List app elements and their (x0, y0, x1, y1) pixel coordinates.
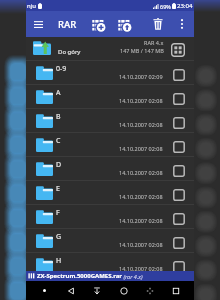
staticText: 23:04 (177, 2, 193, 10)
button[interactable]: Add to archive (89, 15, 108, 34)
staticText: 69% (160, 3, 171, 10)
button[interactable]: More options (173, 15, 190, 32)
staticText: RAR (58, 18, 77, 31)
button[interactable]: Recents (168, 283, 183, 298)
button[interactable]: Switch to grid view (169, 41, 187, 59)
staticText: B (56, 112, 61, 122)
button[interactable]: G (26, 229, 194, 253)
button[interactable]: 0-9 (26, 61, 194, 85)
button[interactable]: Select B (170, 114, 188, 132)
button[interactable]: Select H (170, 258, 188, 276)
staticText: H (56, 256, 62, 266)
button[interactable]: Delete (149, 15, 167, 33)
staticText: nju (27, 2, 36, 10)
button[interactable]: Select A (170, 90, 188, 108)
staticText: (rar 4.x) (122, 273, 143, 280)
button[interactable]: C (26, 133, 194, 157)
button[interactable]: Select D (170, 162, 188, 180)
staticText: C (56, 136, 61, 146)
staticText: 14.10.2007 02:08 (119, 193, 163, 200)
button[interactable]: Select 0-9 (170, 66, 188, 84)
staticText: 14.10.2007 02:08 (119, 121, 163, 128)
staticText: 14.10.2007 02:08 (119, 241, 163, 248)
staticText: E (56, 184, 60, 194)
button[interactable]: Resize (142, 283, 157, 298)
button[interactable]: Select F (170, 210, 188, 228)
button[interactable]: Extract from archive (115, 15, 134, 34)
button[interactable]: Open navigation menu (30, 15, 47, 32)
button[interactable]: Home (116, 283, 131, 298)
staticText: G (56, 232, 62, 242)
staticText: 14.10.2007 02:08 (119, 169, 163, 176)
staticText: Do góry (58, 48, 81, 56)
button[interactable]: E (26, 181, 194, 205)
button[interactable]: Select G (170, 234, 188, 252)
button[interactable]: Back (63, 283, 78, 298)
staticText: 14.10.2007 02:08 (119, 265, 163, 272)
button[interactable]: F (26, 205, 194, 229)
staticText: 14.10.2007 02:08 (119, 145, 163, 152)
staticText: 0-9 (56, 64, 67, 74)
button[interactable]: Select E (170, 186, 188, 204)
staticText: 147 MB / 147 MB (120, 47, 164, 54)
button[interactable]: Do góry (26, 37, 194, 61)
button[interactable]: A (26, 85, 194, 109)
staticText: A (56, 88, 61, 98)
staticText: 14.10.2007 02:09 (119, 73, 163, 80)
staticText: 14.10.2007 02:08 (119, 217, 163, 224)
staticText: 14.10.2007 02:08 (119, 97, 163, 104)
staticText: RAR 4.x (144, 39, 164, 46)
staticText: D (56, 160, 62, 170)
button[interactable]: H (26, 253, 194, 277)
button[interactable]: B (26, 109, 194, 133)
button[interactable]: D (26, 157, 194, 181)
button[interactable]: Select C (170, 138, 188, 156)
button[interactable]: ZX-Spectrum.5000GAMES.rar (26, 271, 194, 281)
button[interactable]: Download (89, 283, 104, 298)
staticText: F (56, 208, 60, 218)
staticText: ZX-Spectrum.5000GAMES.rar (37, 272, 122, 280)
